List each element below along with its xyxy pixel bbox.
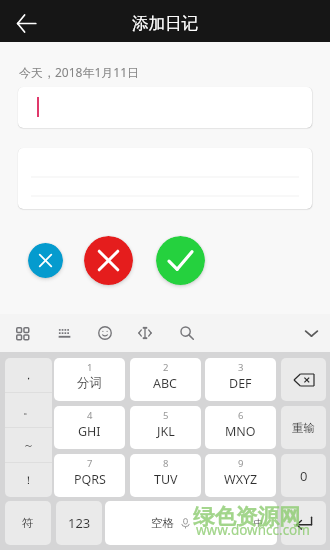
button[interactable]: ～ bbox=[5, 428, 52, 462]
staticText: 绿色资源网 bbox=[193, 503, 301, 530]
staticText: 中 bbox=[254, 517, 263, 528]
button[interactable]: DEF bbox=[205, 358, 276, 401]
button[interactable]: ！ bbox=[5, 463, 52, 497]
button[interactable]: Search bbox=[172, 318, 202, 348]
button[interactable]: 0 bbox=[281, 454, 326, 497]
button[interactable]: GHI bbox=[54, 406, 125, 449]
staticText: 3 bbox=[238, 361, 244, 374]
button[interactable]: Apps bbox=[7, 318, 37, 348]
staticText: TUV bbox=[154, 471, 178, 488]
staticText: 。 bbox=[23, 403, 34, 417]
staticText: 6 bbox=[238, 409, 244, 422]
button[interactable]: 。 bbox=[5, 393, 52, 427]
button[interactable]: Emoji bbox=[90, 318, 120, 348]
staticText: 2 bbox=[163, 361, 169, 374]
button[interactable]: JKL bbox=[130, 406, 201, 449]
staticText: 今天，2018年1月11日 bbox=[19, 64, 140, 80]
staticText: 分词 bbox=[77, 375, 102, 391]
staticText: PQRS bbox=[74, 471, 106, 488]
staticText: www.downcc.com bbox=[196, 521, 310, 539]
button[interactable]: Back bbox=[10, 7, 42, 39]
button[interactable]: 符 bbox=[5, 501, 51, 545]
staticText: 4 bbox=[87, 409, 93, 422]
staticText: 符 bbox=[22, 516, 34, 530]
staticText: ～ bbox=[23, 438, 34, 452]
staticText: 0 bbox=[300, 467, 308, 485]
button[interactable]: WXYZ bbox=[205, 454, 276, 497]
staticText: GHI bbox=[78, 423, 101, 440]
staticText: 1 bbox=[87, 361, 93, 374]
button[interactable]: ， bbox=[5, 358, 52, 392]
button[interactable]: Confirm bbox=[156, 236, 205, 285]
button[interactable]: 空格 bbox=[105, 501, 277, 545]
staticText: ！ bbox=[23, 473, 34, 487]
button[interactable]: TUV bbox=[130, 454, 201, 497]
button[interactable]: Delete bbox=[84, 236, 133, 285]
staticText: 8 bbox=[163, 457, 169, 470]
staticText: JKL bbox=[157, 423, 175, 440]
staticText: 空格 bbox=[151, 516, 174, 530]
staticText: DEF bbox=[229, 375, 252, 392]
button[interactable]: PQRS bbox=[54, 454, 125, 497]
button[interactable]: 123 bbox=[56, 501, 102, 545]
staticText: 重输 bbox=[292, 421, 315, 435]
button[interactable]: 重输 bbox=[281, 406, 326, 449]
button[interactable]: ABC bbox=[130, 358, 201, 401]
staticText: MNO bbox=[225, 423, 256, 440]
button[interactable]: 分词 bbox=[54, 358, 125, 401]
staticText: ABC bbox=[153, 375, 178, 392]
button[interactable]: Hide keyboard bbox=[296, 318, 326, 348]
staticText: 添加日记 bbox=[132, 13, 198, 34]
staticText: WXYZ bbox=[224, 471, 258, 488]
button[interactable]: Backspace bbox=[281, 358, 326, 401]
staticText: 5 bbox=[163, 409, 169, 422]
staticText: 9 bbox=[238, 457, 244, 470]
button[interactable]: Enter bbox=[281, 501, 326, 545]
button[interactable]: Keyboard bbox=[49, 318, 79, 348]
button[interactable]: Cancel bbox=[28, 243, 63, 278]
button[interactable] bbox=[18, 87, 312, 128]
staticText: 7 bbox=[87, 457, 93, 470]
button[interactable]: MNO bbox=[205, 406, 276, 449]
button[interactable]: Move cursor bbox=[130, 318, 160, 348]
staticText: 123 bbox=[68, 514, 91, 532]
staticText: ， bbox=[23, 368, 34, 382]
